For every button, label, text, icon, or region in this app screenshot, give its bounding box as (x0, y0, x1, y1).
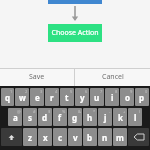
button[interactable]: c (53, 128, 67, 146)
button[interactable]: n (98, 128, 112, 146)
staticText: 9 (130, 89, 133, 94)
button[interactable]: Save (0, 68, 74, 86)
button[interactable]: f (53, 108, 67, 126)
staticText: Choose Action (51, 28, 99, 38)
staticText: h (87, 112, 93, 123)
staticText: l (134, 112, 137, 123)
button[interactable]: g (68, 108, 82, 126)
button[interactable]: a (8, 108, 22, 126)
staticText: 3 (40, 89, 43, 94)
staticText: - (109, 109, 111, 114)
staticText: t (65, 92, 69, 103)
staticText: b (87, 132, 93, 143)
button[interactable]: y (75, 88, 89, 106)
staticText: o (125, 92, 130, 103)
staticText: n (102, 132, 108, 143)
button[interactable]: i (105, 88, 119, 106)
button[interactable]: Cancel (75, 68, 150, 86)
button[interactable]: m (113, 128, 127, 146)
button[interactable]: x (38, 128, 52, 146)
button[interactable]: o (120, 88, 134, 106)
button[interactable]: h (83, 108, 97, 126)
staticText: 8 (115, 89, 118, 94)
staticText: s (28, 112, 33, 123)
staticText: Cancel (102, 72, 124, 82)
staticText: @ (17, 109, 21, 114)
staticText: 5 (70, 89, 73, 94)
staticText: # (33, 109, 36, 114)
staticText: k (118, 112, 123, 123)
staticText: u (94, 92, 100, 103)
staticText: v (73, 132, 78, 143)
button[interactable]: p (135, 88, 149, 106)
staticText: 2 (25, 89, 28, 94)
staticText: 6 (85, 89, 88, 94)
staticText: % (62, 109, 66, 114)
staticText: & (78, 109, 81, 114)
staticText: 7 (100, 89, 103, 94)
staticText: 0 (145, 89, 148, 94)
staticText: i (111, 92, 114, 103)
button[interactable]: r (45, 88, 59, 106)
staticText: $ (48, 109, 51, 114)
staticText: a (13, 112, 18, 123)
staticText: y (80, 92, 85, 103)
button[interactable]: v (68, 128, 82, 146)
other: Flow arrow down (69, 6, 81, 21)
staticText: p (139, 92, 145, 103)
staticText: r (50, 92, 54, 103)
button[interactable]: d (38, 108, 52, 126)
staticText: z (28, 132, 32, 143)
button[interactable]: l (128, 108, 142, 126)
staticText: e (35, 92, 40, 103)
staticText: q (5, 92, 11, 103)
button[interactable]: s (23, 108, 37, 126)
button[interactable]: k (113, 108, 127, 126)
button[interactable]: w (15, 88, 29, 106)
button[interactable]: e (30, 88, 44, 106)
staticText: c (58, 132, 63, 143)
staticText: d (42, 112, 48, 123)
button[interactable]: q (1, 88, 14, 106)
staticText: 1 (10, 89, 13, 94)
staticText: w (19, 92, 26, 103)
staticText: + (123, 109, 126, 114)
button[interactable]: z (23, 128, 37, 146)
staticText: Save (29, 72, 45, 82)
staticText: x (43, 132, 48, 143)
button[interactable]: Backspace (128, 128, 149, 146)
button[interactable]: Shift (1, 128, 22, 146)
staticText: * (93, 109, 96, 114)
staticText: j (104, 112, 107, 123)
button[interactable]: t (60, 88, 74, 106)
button[interactable]: Choose Action (48, 24, 102, 42)
staticText: g (72, 112, 78, 123)
staticText: f (58, 112, 62, 123)
button[interactable]: u (90, 88, 104, 106)
button[interactable]: b (83, 128, 97, 146)
staticText: 4 (55, 89, 58, 94)
button[interactable]: j (98, 108, 112, 126)
staticText: m (116, 132, 124, 143)
staticText: ( (139, 109, 141, 114)
